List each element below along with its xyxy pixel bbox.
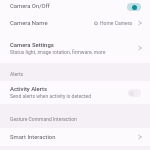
staticText: Camera On/Off	[10, 3, 50, 10]
staticText: Alerts	[10, 71, 24, 77]
button[interactable]: Camera On/Off switch	[127, 3, 141, 11]
staticText: Status light, image rotation, firmware, …	[10, 49, 106, 55]
button[interactable]: Activity Alerts	[0, 81, 150, 104]
staticText: Camera Settings	[10, 42, 54, 49]
button[interactable]: Smart Interaction	[0, 128, 150, 146]
button[interactable]: Camera On/Off	[0, 0, 150, 13]
staticText: Camera Name	[10, 20, 48, 27]
button[interactable]: Activity Alerts switch	[128, 89, 141, 97]
staticText: Send alerts when activity is detected	[10, 93, 92, 99]
button[interactable]: Camera Name	[0, 13, 150, 33]
staticText: Smart Interaction	[10, 134, 56, 141]
staticText: Home Camera	[100, 20, 133, 26]
staticText: Activity Alerts	[10, 86, 48, 93]
button[interactable]: Camera Settings	[0, 33, 150, 63]
staticText: Gesture Command Interaction	[10, 116, 77, 122]
